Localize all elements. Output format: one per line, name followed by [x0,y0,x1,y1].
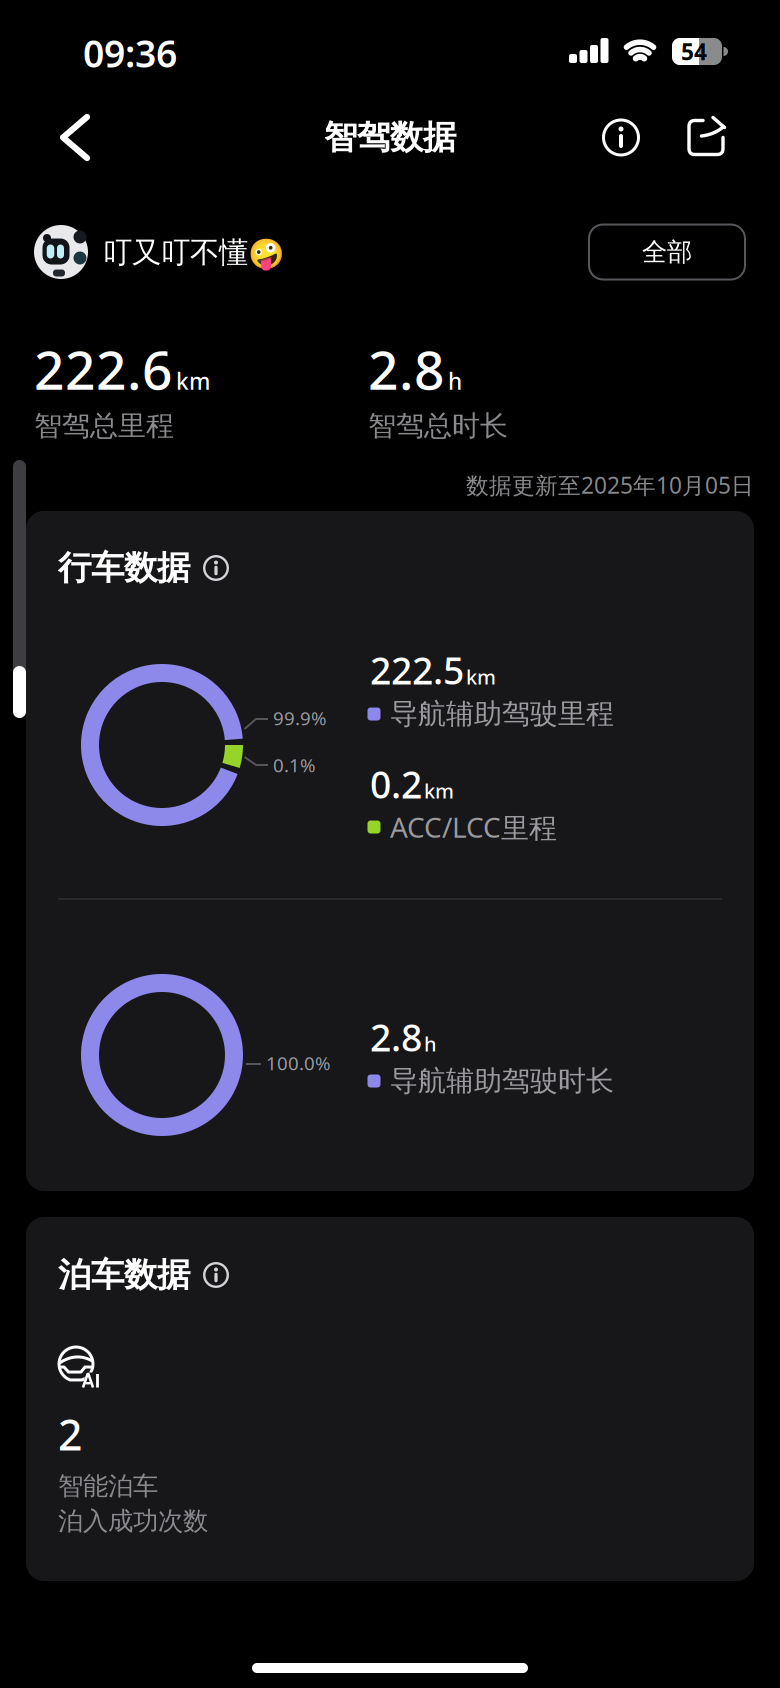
staticText: 0.1% [273,753,316,777]
staticText: 导航辅助驾驶时长 [390,1064,614,1098]
staticText: 99.9% [273,706,327,730]
staticText: 100.0% [266,1051,331,1075]
staticText: h [448,366,462,396]
staticText: km [424,777,454,804]
staticText: 智驾数据 [324,117,456,158]
staticText: 09:36 [83,28,177,78]
staticText: 导航辅助驾驶里程 [390,697,614,731]
staticText: km [176,366,210,396]
button[interactable]: Info [202,554,230,582]
staticText: 2.8 [368,334,445,404]
staticText: 智驾总时长 [368,409,508,443]
staticText: 数据更新至2025年10月05日 [466,470,754,500]
staticText: km [466,663,496,690]
button[interactable]: Info [593,109,649,165]
staticText: 全部 [642,236,692,267]
staticText: 叮又叮不懂🤪 [103,234,285,270]
button[interactable]: Share [681,111,731,163]
staticText: 智能泊车 [58,1470,158,1501]
button[interactable]: 全部 [588,223,746,280]
staticText: 行车数据 [58,547,190,588]
staticText: 222.5 [370,645,464,695]
staticText: ACC/LCC里程 [390,808,557,846]
staticText: 0.2 [370,759,422,809]
button[interactable]: Info [202,1261,230,1289]
staticText: 2.8 [370,1012,422,1062]
staticText: 泊车数据 [58,1254,190,1295]
button[interactable]: Back [48,109,104,166]
staticText: 2 [58,1406,82,1462]
staticText: 智驾总里程 [34,409,174,443]
staticText: 222.6 [34,334,173,404]
staticText: 54 [681,36,707,66]
staticText: h [424,1030,437,1057]
staticText: 泊入成功次数 [58,1505,208,1536]
